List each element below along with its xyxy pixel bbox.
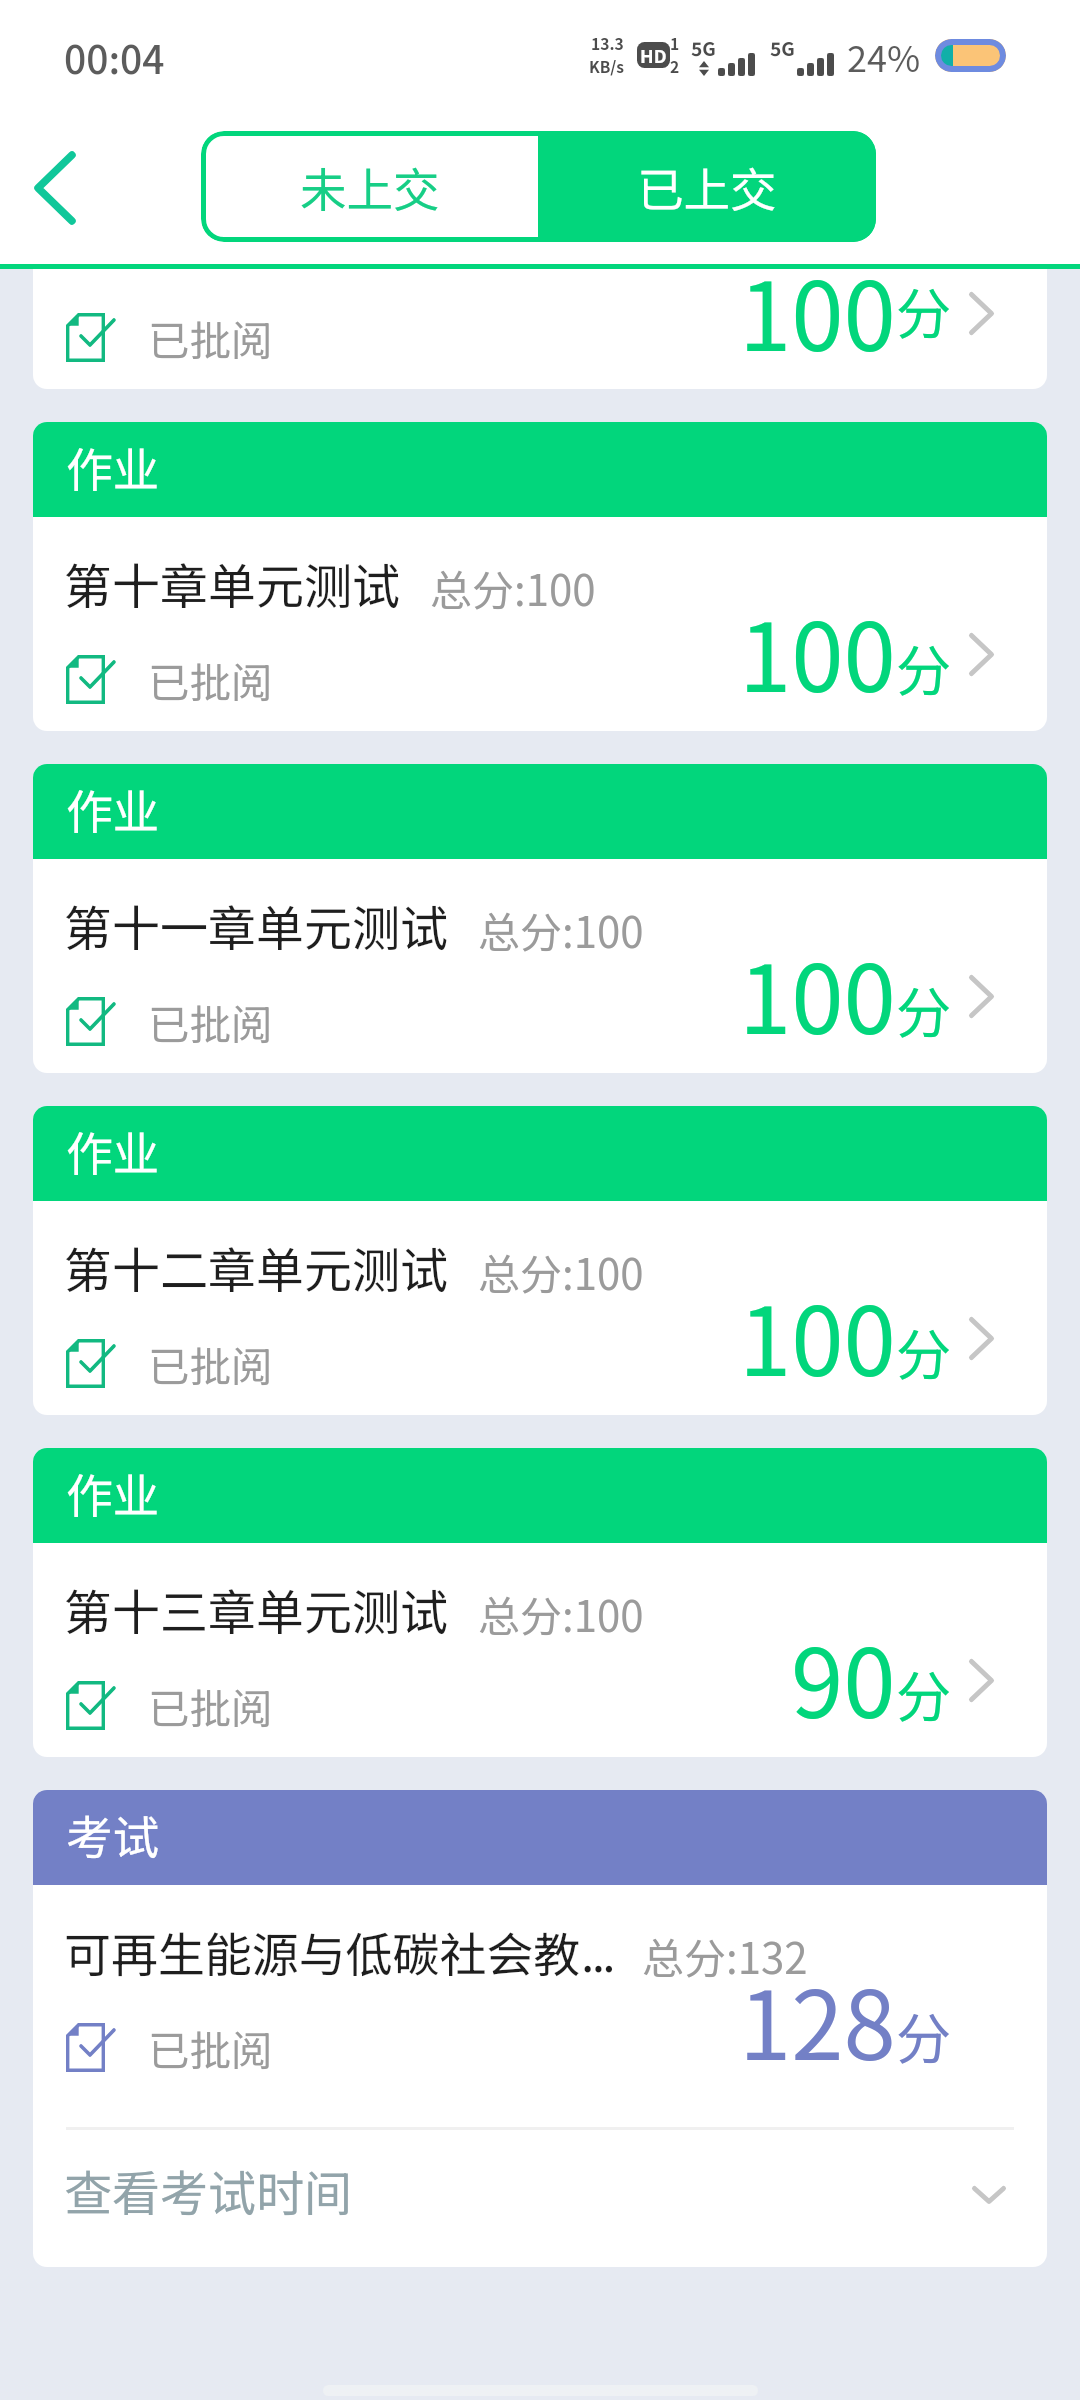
staticText: 作业 bbox=[66, 775, 159, 842]
staticText: 13.3 bbox=[591, 32, 624, 55]
staticText: 第十一章单元测试 bbox=[64, 890, 449, 960]
button[interactable]: 作业 bbox=[33, 764, 1047, 1073]
staticText: 分 bbox=[896, 270, 952, 350]
staticText: ... bbox=[581, 1916, 613, 1986]
staticText: 100 bbox=[739, 269, 896, 362]
staticText: 总分:100 bbox=[430, 557, 596, 618]
staticText: 100 bbox=[739, 583, 896, 719]
button[interactable]: Back bbox=[0, 110, 102, 264]
staticText: 分 bbox=[896, 1995, 952, 2075]
staticText: 考试 bbox=[66, 1801, 159, 1868]
staticText: 总分:132 bbox=[642, 1925, 808, 1986]
staticText: 可再生能源与低碳社会教 bbox=[64, 1918, 581, 1986]
staticText: 已批阅 bbox=[148, 1334, 273, 1394]
button[interactable]: 查看考试时间 bbox=[66, 2130, 1014, 2267]
staticText: 作业 bbox=[66, 1459, 159, 1526]
staticText: 128 bbox=[739, 1951, 896, 2087]
staticText: 作业 bbox=[66, 433, 159, 500]
staticText: 5G bbox=[770, 34, 795, 61]
staticText: 5G bbox=[691, 34, 716, 61]
staticText: 1 bbox=[670, 32, 680, 55]
staticText: HD bbox=[640, 42, 667, 68]
button[interactable]: 已批阅 bbox=[33, 269, 1047, 389]
button[interactable]: 作业 bbox=[33, 1448, 1047, 1757]
button[interactable]: 作业 bbox=[33, 1106, 1047, 1415]
staticText: 查看考试时间 bbox=[64, 2155, 353, 2225]
staticText: 已上交 bbox=[637, 153, 777, 220]
staticText: 已批阅 bbox=[148, 1676, 273, 1736]
button[interactable]: 未上交 bbox=[201, 131, 538, 242]
staticText: 作业 bbox=[66, 1117, 159, 1184]
staticText: 分 bbox=[896, 969, 952, 1049]
staticText: 分 bbox=[896, 1653, 952, 1733]
staticText: 已批阅 bbox=[148, 308, 273, 368]
staticText: 总分:100 bbox=[478, 1583, 644, 1644]
staticText: 分 bbox=[896, 1311, 952, 1391]
staticText: 已批阅 bbox=[148, 650, 273, 710]
button[interactable]: 已上交 bbox=[538, 131, 876, 242]
staticText: 2 bbox=[670, 55, 680, 78]
staticText: 第十二章单元测试 bbox=[64, 1232, 449, 1302]
button[interactable]: 作业 bbox=[33, 422, 1047, 731]
staticText: KB/s bbox=[589, 55, 625, 78]
staticText: 24% bbox=[847, 30, 921, 82]
staticText: 未上交 bbox=[300, 153, 440, 220]
staticText: 分 bbox=[896, 627, 952, 707]
staticText: 已批阅 bbox=[148, 992, 273, 1052]
staticText: 100 bbox=[739, 925, 896, 1061]
button[interactable]: 考试 bbox=[33, 1790, 1047, 2267]
staticText: 总分:100 bbox=[478, 899, 644, 960]
staticText: 90 bbox=[791, 1609, 896, 1745]
staticText: 总分:100 bbox=[478, 1241, 644, 1302]
staticText: 00:04 bbox=[64, 29, 165, 85]
staticText: 第十章单元测试 bbox=[64, 548, 401, 618]
staticText: 第十三章单元测试 bbox=[64, 1574, 449, 1644]
staticText: 100 bbox=[739, 1267, 896, 1403]
staticText: 已批阅 bbox=[148, 2018, 273, 2078]
